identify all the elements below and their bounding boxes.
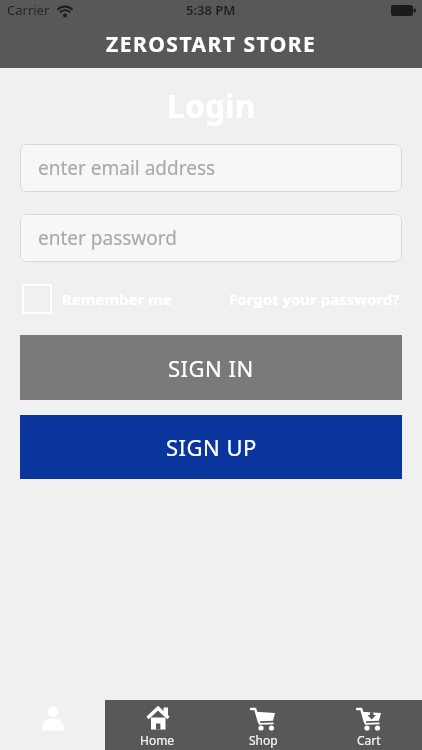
- staticText: Shop: [249, 732, 278, 748]
- button[interactable]: enter email address: [20, 144, 402, 192]
- button[interactable]: [22, 284, 52, 314]
- button[interactable]: User: [0, 700, 105, 750]
- staticText: Login: [167, 84, 256, 128]
- staticText: enter password: [38, 225, 177, 251]
- staticText: 5:38 PM: [186, 1, 236, 19]
- button[interactable]: SIGN UP: [20, 415, 402, 479]
- button[interactable]: Cart: [316, 700, 422, 750]
- button[interactable]: Home: [105, 700, 210, 750]
- button[interactable]: enter password: [20, 214, 402, 262]
- staticText: enter email address: [38, 155, 216, 181]
- button[interactable]: SIGN IN: [20, 335, 402, 400]
- staticText: Carrier: [7, 1, 50, 19]
- staticText: Home: [140, 732, 175, 748]
- staticText: Remember me: [62, 289, 172, 309]
- button[interactable]: Forgot your password?: [229, 289, 400, 309]
- button[interactable]: Shop: [210, 700, 316, 750]
- staticText: SIGN IN: [168, 353, 254, 383]
- staticText: Cart: [357, 732, 381, 748]
- staticText: ZEROSTART STORE: [106, 30, 317, 59]
- staticText: SIGN UP: [166, 432, 257, 462]
